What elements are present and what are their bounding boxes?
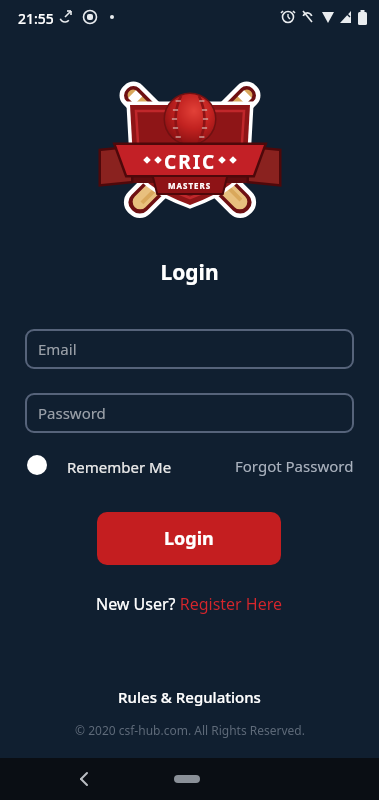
staticText: © 2020 csf-hub.com. All Rights Reserved. — [75, 722, 305, 738]
staticText: New User? Register Here — [96, 593, 283, 615]
staticText: Login — [164, 526, 214, 551]
staticText: Email — [38, 339, 77, 359]
staticText: Rules & Regulations — [118, 687, 261, 707]
staticText: 21:55 — [18, 9, 54, 28]
staticText: CRIC — [164, 149, 217, 175]
staticText: MASTERS — [168, 180, 212, 191]
staticText: Password — [38, 403, 106, 423]
staticText: Remember Me — [67, 457, 172, 477]
staticText: Login — [160, 258, 219, 287]
staticText: Forgot Password — [235, 456, 354, 476]
